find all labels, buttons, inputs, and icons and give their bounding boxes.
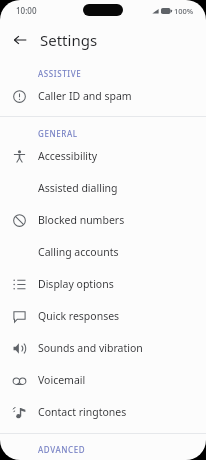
button[interactable]: Accessibility — [0, 140, 206, 172]
staticText: 100% — [174, 6, 194, 16]
staticText: Caller ID and spam — [38, 89, 132, 103]
staticText: 10:00 — [16, 5, 37, 16]
button[interactable]: Caller ID and spam — [0, 80, 206, 112]
staticText: GENERAL — [38, 128, 78, 139]
staticText: Settings — [40, 30, 98, 50]
staticText: Contact ringtones — [38, 405, 127, 419]
staticText: Calling accounts — [38, 245, 119, 259]
staticText: Display options — [38, 277, 114, 291]
button[interactable]: Blocked numbers — [0, 204, 206, 236]
staticText: Assisted dialling — [38, 181, 118, 195]
button[interactable]: Display options — [0, 268, 206, 300]
button[interactable]: Assisted dialling — [0, 172, 206, 204]
staticText: ADVANCED — [38, 444, 86, 455]
staticText: Accessibility — [38, 149, 98, 163]
staticText: ASSISTIVE — [38, 68, 82, 79]
staticText: Sounds and vibration — [38, 341, 143, 355]
button[interactable]: Sounds and vibration — [0, 332, 206, 364]
button[interactable]: Calling accounts — [0, 236, 206, 268]
button[interactable]: Back — [5, 25, 35, 55]
staticText: Quick responses — [38, 309, 120, 323]
button[interactable]: Quick responses — [0, 300, 206, 332]
button[interactable]: Voicemail — [0, 364, 206, 396]
staticText: Blocked numbers — [38, 213, 125, 227]
button[interactable]: Contact ringtones — [0, 396, 206, 428]
staticText: Voicemail — [38, 373, 86, 387]
